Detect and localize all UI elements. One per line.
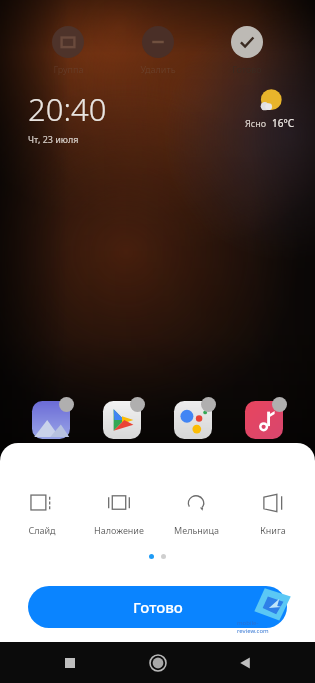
staticText: Книга <box>260 524 286 536</box>
staticText: Ясно <box>245 117 267 129</box>
button[interactable]: App <box>173 400 213 440</box>
button[interactable]: App <box>31 400 71 440</box>
button[interactable]: App <box>244 400 284 440</box>
button[interactable]: Готово <box>227 22 267 79</box>
staticText: Наложение <box>94 524 144 536</box>
staticText: 16°C <box>272 116 295 130</box>
staticText: Готово <box>133 597 183 617</box>
staticText: Группа <box>53 63 84 75</box>
button[interactable]: Recents <box>52 645 88 681</box>
staticText: mobile-review.com <box>237 619 289 635</box>
button[interactable]: Готово <box>28 586 287 628</box>
staticText: Чт, 23 июля <box>28 133 79 145</box>
staticText: Мельница <box>174 524 219 536</box>
button[interactable]: Мельница <box>161 488 231 538</box>
button[interactable]: App <box>102 400 142 440</box>
button[interactable]: Слайд <box>7 488 77 538</box>
staticText: Удалить <box>140 63 176 75</box>
staticText: Слайд <box>28 524 56 536</box>
staticText: Готово <box>232 63 262 75</box>
button[interactable]: Home <box>140 645 176 681</box>
button[interactable]: Удалить <box>136 22 180 79</box>
button[interactable]: Книга <box>238 488 308 538</box>
button[interactable]: Группа <box>48 22 88 79</box>
button[interactable]: Наложение <box>84 488 154 538</box>
staticText: 20:40 <box>28 88 107 130</box>
button[interactable]: Back <box>227 645 263 681</box>
